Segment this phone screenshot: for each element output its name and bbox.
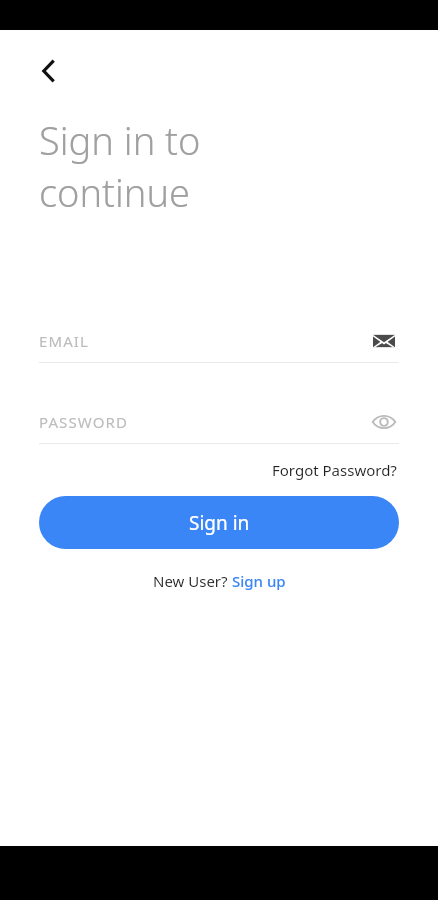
button[interactable]: Back	[26, 48, 72, 94]
staticText: Forgot Password?	[272, 460, 397, 480]
staticText: Sign up	[232, 571, 286, 591]
staticText: EMAIL	[39, 331, 369, 351]
staticText: New User?	[153, 571, 232, 591]
button[interactable]: Sign in	[39, 496, 399, 549]
button[interactable]: Forgot Password?	[270, 458, 399, 482]
staticText: Sign in	[189, 510, 250, 536]
staticText: PASSWORD	[39, 412, 369, 432]
button[interactable]: PASSWORD	[39, 407, 399, 444]
button[interactable]: EMAIL	[39, 326, 399, 363]
button[interactable]: Sign up	[232, 571, 286, 591]
button[interactable]: Show password	[369, 407, 399, 437]
button[interactable]: Email	[369, 326, 399, 356]
staticText: Sign in to continue	[39, 114, 201, 218]
